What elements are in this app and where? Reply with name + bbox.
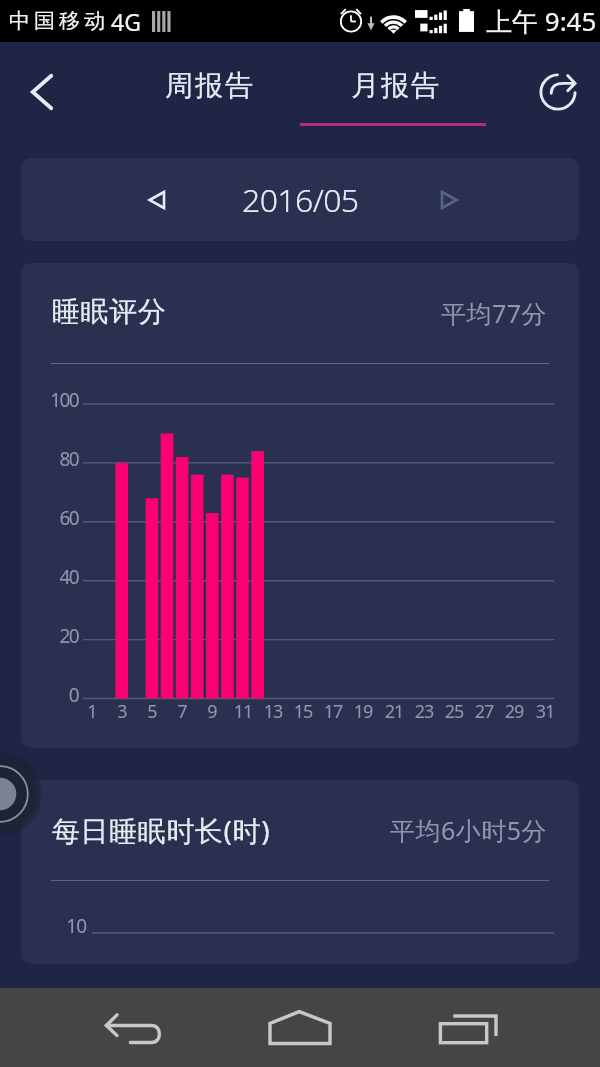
staticText: 10	[21, 913, 86, 939]
staticText: 20	[21, 623, 78, 649]
button[interactable]: Back	[0, 61, 84, 123]
staticText: 1	[72, 699, 112, 724]
staticText: 平均77分	[441, 296, 548, 330]
staticText: 80	[21, 446, 78, 472]
staticText: 周报告	[165, 68, 255, 103]
button[interactable]: Home	[240, 988, 360, 1067]
staticText: 9	[192, 699, 232, 724]
staticText: 100	[21, 387, 78, 413]
button[interactable]: Share	[516, 61, 600, 123]
staticText: 睡眠评分	[52, 294, 167, 329]
staticText: 5	[132, 699, 172, 724]
staticText: 7	[162, 699, 202, 724]
button[interactable]: 月报告	[300, 42, 486, 126]
staticText: 2016/05	[242, 178, 359, 222]
staticText: 11	[223, 699, 263, 724]
staticText: 60	[21, 505, 78, 531]
staticText: 每日睡眠时长(时)	[52, 811, 271, 849]
staticText: 平均6小时5分	[390, 813, 548, 847]
staticText: 31	[525, 699, 565, 724]
staticText: 17	[313, 699, 353, 724]
button[interactable]: 周报告	[114, 42, 300, 126]
button[interactable]: Back	[73, 988, 193, 1067]
staticText: 0	[21, 682, 78, 708]
button[interactable]: Next month	[416, 167, 482, 233]
staticText: 13	[253, 699, 293, 724]
staticText: 29	[494, 699, 534, 724]
staticText: 中国移动	[7, 8, 107, 34]
staticText: 40	[21, 564, 78, 590]
staticText: 19	[343, 699, 383, 724]
staticText: 3	[102, 699, 142, 724]
staticText: 15	[283, 699, 323, 724]
staticText: 23	[404, 699, 444, 724]
staticText: 上午 9:45	[486, 3, 597, 39]
staticText: 21	[374, 699, 414, 724]
staticText: 4G	[111, 6, 141, 37]
button[interactable]: Recents	[408, 988, 528, 1067]
staticText: 27	[464, 699, 504, 724]
button[interactable]: Previous month	[123, 167, 189, 233]
staticText: 25	[434, 699, 474, 724]
staticText: 月报告	[351, 68, 441, 103]
button[interactable]: Assistive touch	[0, 754, 40, 834]
